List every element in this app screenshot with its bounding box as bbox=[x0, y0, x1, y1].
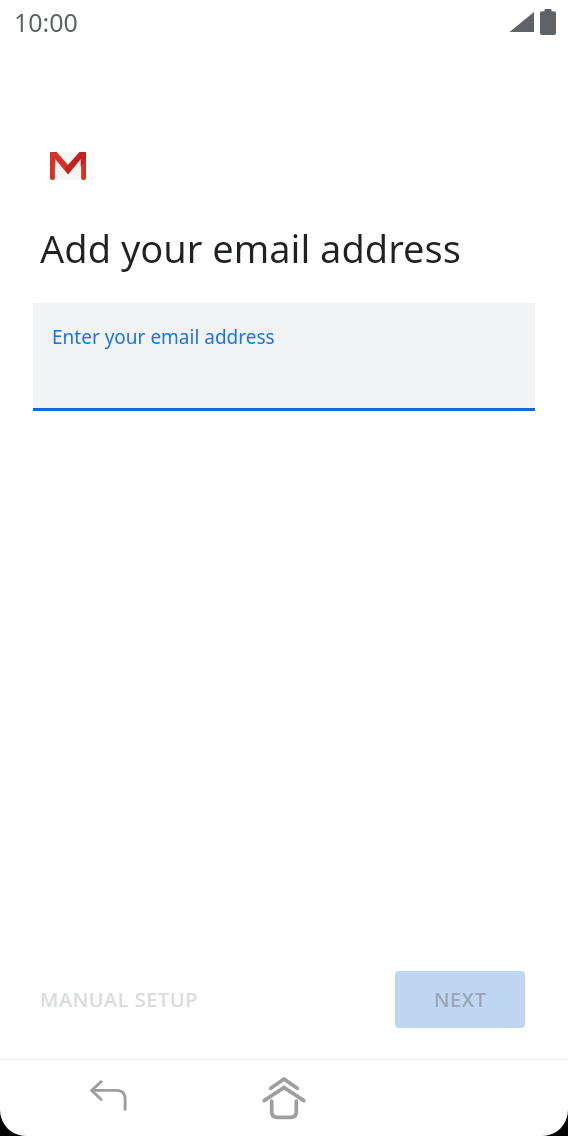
button[interactable]: Back bbox=[78, 1068, 138, 1128]
staticText: Add your email address bbox=[40, 222, 461, 274]
button[interactable]: Enter your email address bbox=[33, 303, 535, 411]
staticText: 10:00 bbox=[14, 5, 78, 39]
button[interactable]: Home bbox=[253, 1067, 315, 1129]
button[interactable]: MANUAL SETUP bbox=[24, 976, 215, 1023]
staticText: NEXT bbox=[434, 986, 487, 1013]
staticText: Enter your email address bbox=[52, 324, 275, 350]
button[interactable]: NEXT bbox=[395, 971, 525, 1028]
staticText: MANUAL SETUP bbox=[40, 986, 199, 1013]
